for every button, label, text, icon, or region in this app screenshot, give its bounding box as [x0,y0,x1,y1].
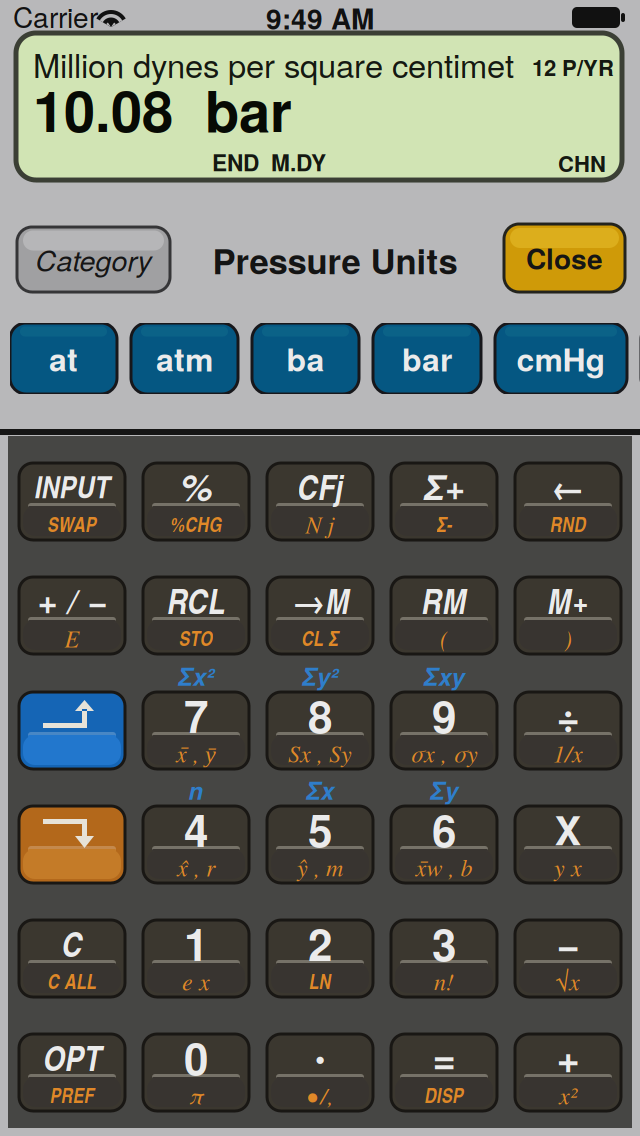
button[interactable]: − [515,920,621,997]
button[interactable]: Category [17,227,170,292]
staticText: 2 [308,911,332,974]
button[interactable]: RM [391,577,497,654]
staticText: σx , σy [410,737,478,769]
staticText: Pressure Units [212,235,457,285]
staticText: + [556,1028,579,1086]
staticText: Σx² [178,659,214,693]
staticText: E [64,622,79,654]
staticText: CHN [558,147,606,179]
staticText: n [188,773,203,807]
staticText: + / − [37,575,107,625]
button[interactable]: ba [252,323,359,394]
button[interactable]: at [10,323,117,394]
button[interactable]: n [143,806,249,883]
staticText: RND [550,510,586,538]
staticText: • [315,1036,325,1078]
staticText: SWAP [47,510,96,538]
staticText: RM [421,576,466,624]
staticText: 0 [184,1025,208,1088]
button[interactable]: RCL [143,577,249,654]
button[interactable]: + [515,1034,621,1111]
staticText: 12 P/YR [532,51,614,83]
button[interactable]: INPUT [19,463,125,540]
staticText: ) [564,622,572,654]
staticText: 9:49 AM [266,0,374,38]
staticText: atm [156,336,213,381]
button[interactable]: 1 [143,920,249,997]
button[interactable]: 2 [267,920,373,997]
staticText: x̂ , r [177,851,215,883]
staticText: C [61,919,82,967]
button[interactable]: M+ [515,577,621,654]
button[interactable]: Σy² [267,692,373,769]
staticText: 6 [432,797,456,860]
button[interactable]: OPT [19,1034,125,1111]
staticText: Million dynes per square centimet [33,41,514,87]
staticText: cmHg [516,336,605,381]
staticText: = [432,1028,455,1086]
button[interactable]: →M [267,577,373,654]
button[interactable]: Σx [267,806,373,883]
staticText: CFj [297,462,343,510]
staticText: %CHG [170,510,222,538]
staticText: Σy² [302,659,338,693]
button[interactable]: = [391,1034,497,1111]
staticText: M+ [547,576,588,624]
staticText: 1/x [553,737,583,769]
staticText: x² [559,1079,577,1111]
staticText: y x [554,851,582,883]
staticText: ba [286,336,324,381]
staticText: ŷ , m [297,851,343,883]
button[interactable]: % [143,463,249,540]
staticText: bar [402,336,452,381]
button[interactable]: ← [515,463,621,540]
button[interactable]: C [19,920,125,997]
button[interactable] [19,692,125,769]
button[interactable]: + / − [19,577,125,654]
staticText: Category [35,239,151,280]
staticText: 5 [308,797,332,860]
button[interactable]: • [267,1034,373,1111]
staticText: x̄w , b [415,851,472,883]
staticText: N j [305,508,334,540]
button[interactable]: X [515,806,621,883]
staticText: RCL [167,576,225,624]
button[interactable]: Σy [391,806,497,883]
button[interactable]: atm [131,323,238,394]
staticText: 3 [432,911,456,974]
staticText: 1 [184,911,208,974]
button[interactable]: 3 [391,920,497,997]
button[interactable]: bar [373,323,481,394]
staticText: ← [550,461,585,511]
button[interactable]: Σx² [143,692,249,769]
button[interactable]: Close [504,224,625,292]
staticText: Σ- [436,510,451,538]
staticText: Σx [306,773,334,807]
staticText: STO [179,624,213,652]
staticText: − [556,914,579,972]
staticText: INPUT [34,464,109,507]
staticText: at [49,336,78,381]
button[interactable]: CFj [267,463,373,540]
staticText: X [554,800,581,858]
staticText: • /, [306,1079,333,1111]
staticText: 9 [432,683,456,746]
button[interactable]: cmHg [495,323,627,394]
staticText: x̄ , ȳ [176,737,216,769]
button[interactable] [19,806,125,883]
staticText: OPT [43,1033,101,1081]
staticText: π [188,1079,203,1111]
staticText: 10.08 bar [33,69,292,149]
staticText: CL Σ [301,624,338,652]
staticText: Sx , Sy [288,737,352,769]
button[interactable]: Σxy [391,692,497,769]
staticText: Close [526,238,603,278]
button[interactable]: ÷ [515,692,621,769]
staticText: LN [309,967,331,995]
staticText: DISP [424,1081,463,1109]
staticText: PREF [50,1081,94,1109]
button[interactable]: Σ+ [391,463,497,540]
staticText: Carrier [13,0,98,36]
staticText: n! [434,965,454,997]
button[interactable]: 0 [143,1034,249,1111]
